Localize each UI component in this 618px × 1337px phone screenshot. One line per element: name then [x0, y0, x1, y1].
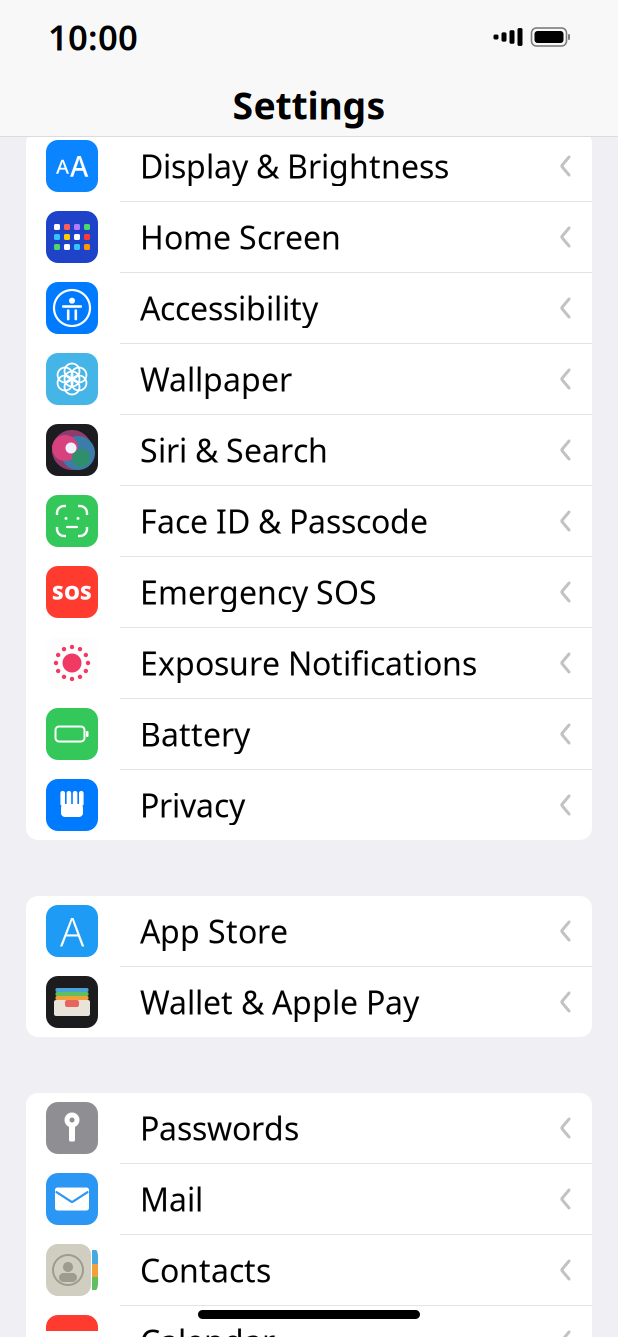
button[interactable]: A: [26, 896, 592, 967]
button[interactable]: Accessibility: [26, 273, 592, 344]
button[interactable]: Mail: [26, 1164, 592, 1235]
button[interactable]: Siri & Search: [26, 415, 592, 486]
staticText: A: [56, 153, 69, 179]
staticText: Settings: [232, 80, 385, 130]
button[interactable]: Battery: [26, 699, 592, 770]
staticText: Wallet & Apple Pay: [140, 981, 419, 1023]
staticText: Passwords: [140, 1107, 299, 1149]
button[interactable]: Face ID & Passcode: [26, 486, 592, 557]
staticText: 10:00: [48, 14, 138, 60]
staticText: Contacts: [140, 1249, 271, 1291]
button[interactable]: Contacts: [26, 1235, 592, 1306]
button[interactable]: Wallet & Apple Pay: [26, 967, 592, 1037]
staticText: A: [70, 147, 88, 185]
staticText: Accessibility: [140, 287, 318, 329]
staticText: Siri & Search: [140, 429, 328, 471]
staticText: Exposure Notifications: [140, 642, 477, 684]
button[interactable]: Home Screen: [26, 202, 592, 273]
button[interactable]: Wallpaper: [26, 344, 592, 415]
button[interactable]: Privacy: [26, 770, 592, 840]
button[interactable]: Exposure Notifications: [26, 628, 592, 699]
staticText: Face ID & Passcode: [140, 500, 428, 542]
staticText: Display & Brightness: [140, 145, 449, 187]
button[interactable]: Passwords: [26, 1093, 592, 1164]
button[interactable]: Calendar: [26, 1306, 592, 1337]
button[interactable]: SOS: [26, 557, 592, 628]
staticText: Wallpaper: [140, 358, 292, 400]
staticText: Mail: [140, 1178, 203, 1220]
staticText: Emergency SOS: [140, 571, 377, 613]
staticText: Home Screen: [140, 216, 341, 258]
staticText: Calendar: [140, 1320, 275, 1337]
staticText: App Store: [140, 910, 288, 952]
staticText: A: [60, 904, 84, 957]
staticText: Privacy: [140, 784, 245, 826]
button[interactable]: A: [26, 131, 592, 202]
staticText: SOS: [52, 579, 92, 605]
staticText: Battery: [140, 713, 250, 755]
